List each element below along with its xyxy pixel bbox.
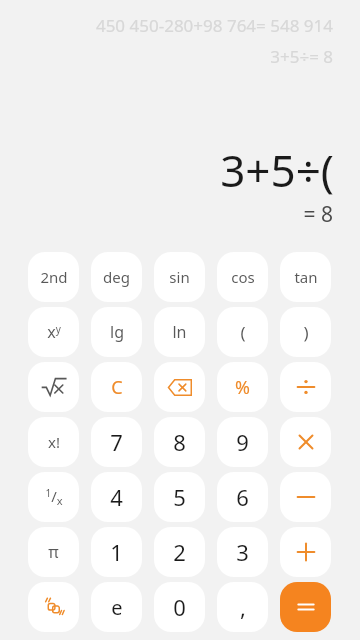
staticText: x! [48, 432, 60, 452]
button[interactable]: Backspace [154, 362, 205, 412]
button[interactable]: ) [280, 307, 331, 357]
button[interactable]: 2 [154, 527, 205, 577]
staticText: ( [240, 321, 246, 344]
staticText: π [48, 541, 59, 563]
staticText: C [111, 375, 123, 400]
staticText: lg [110, 321, 124, 343]
button[interactable]: lg [91, 307, 142, 357]
button[interactable]: cos [217, 252, 268, 302]
button[interactable]: 4 [91, 472, 142, 522]
button[interactable]: deg [91, 252, 142, 302]
button[interactable]: Degrees minutes seconds [28, 582, 79, 632]
button[interactable]: π [28, 527, 79, 577]
button[interactable]: 0 [154, 582, 205, 632]
button[interactable]: 8 [154, 417, 205, 467]
button[interactable]: x! [28, 417, 79, 467]
button[interactable]: one over x [28, 472, 79, 522]
staticText: 3+5÷( [220, 140, 334, 200]
staticText: = 8 [303, 200, 333, 229]
button[interactable]: % [217, 362, 268, 412]
staticText: xy [47, 321, 61, 343]
staticText: tan [294, 267, 318, 287]
staticText: 3+5÷= 8 [270, 45, 333, 68]
staticText: 0 [173, 592, 186, 622]
staticText: , [240, 592, 246, 622]
button[interactable]: 1 [91, 527, 142, 577]
button[interactable]: 9 [217, 417, 268, 467]
button[interactable]: Minus [280, 472, 331, 522]
button[interactable]: ln [154, 307, 205, 357]
button[interactable]: 7 [91, 417, 142, 467]
button[interactable]: C [91, 362, 142, 412]
staticText: % [235, 375, 250, 400]
button[interactable]: Plus [280, 527, 331, 577]
button[interactable]: 6 [217, 472, 268, 522]
staticText: 7 [110, 427, 123, 457]
staticText: deg [103, 267, 130, 287]
staticText: 5 [173, 482, 186, 512]
button[interactable]: 2nd [28, 252, 79, 302]
staticText: ln [172, 321, 187, 343]
button[interactable]: 5 [154, 472, 205, 522]
button[interactable]: ( [217, 307, 268, 357]
staticText: 4 [110, 482, 123, 512]
staticText: 8 [173, 427, 186, 457]
button[interactable]: 3 [217, 527, 268, 577]
staticText: 450 450-280+98 764= 548 914 [95, 14, 333, 37]
button[interactable]: x to the power y [28, 307, 79, 357]
button[interactable]: Equals [280, 582, 331, 632]
button[interactable]: , [217, 582, 268, 632]
staticText: cos [231, 267, 255, 287]
staticText: 3 [236, 537, 249, 567]
staticText: 6 [236, 482, 249, 512]
staticText: 1 [110, 537, 123, 567]
button[interactable]: Divide [280, 362, 331, 412]
button[interactable]: Square root [28, 362, 79, 412]
button[interactable]: e [91, 582, 142, 632]
staticText: sin [169, 267, 190, 287]
staticText: ) [303, 321, 309, 344]
staticText: 1/x [45, 486, 63, 508]
button[interactable]: tan [280, 252, 331, 302]
staticText: 2nd [40, 267, 68, 287]
button[interactable]: sin [154, 252, 205, 302]
staticText: 2 [173, 537, 186, 567]
staticText: 9 [236, 427, 249, 457]
staticText: e [111, 594, 123, 621]
button[interactable]: Multiply [280, 417, 331, 467]
